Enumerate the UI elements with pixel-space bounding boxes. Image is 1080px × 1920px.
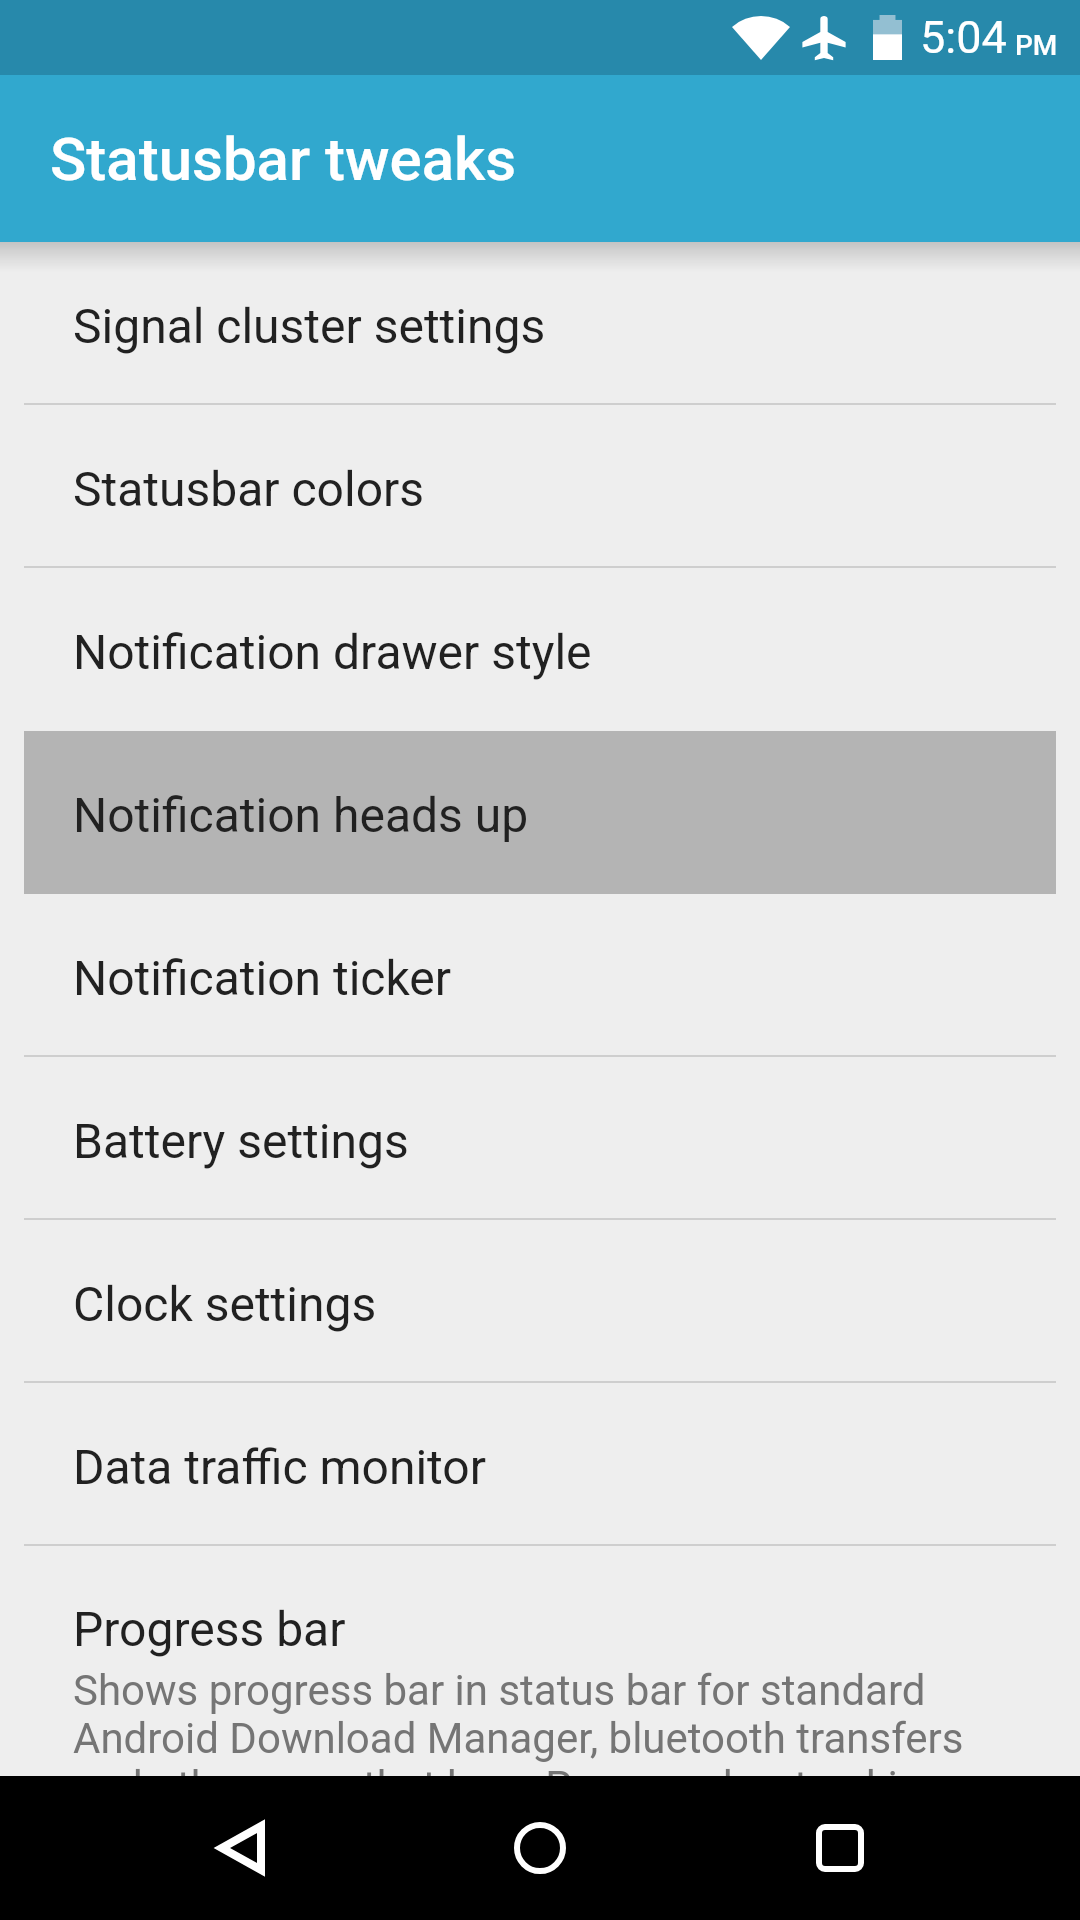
button[interactable]: Battery settings [0, 1057, 1080, 1220]
button[interactable]: Data traffic monitor [0, 1383, 1080, 1546]
staticText: Notification ticker [73, 950, 452, 1006]
staticText: Signal cluster settings [73, 298, 546, 354]
staticText: Shows progress bar in status bar for sta… [73, 1666, 1020, 1776]
button[interactable]: Statusbar colors [0, 405, 1080, 568]
button[interactable]: Notification heads up [0, 731, 1080, 894]
staticText: Statusbar colors [73, 461, 425, 517]
button[interactable]: Recent apps [780, 1788, 900, 1908]
button[interactable]: Home [480, 1788, 600, 1908]
staticText: 5:04 [920, 11, 1007, 64]
staticText: Battery settings [73, 1113, 409, 1169]
button[interactable]: Back [180, 1788, 300, 1908]
button[interactable]: Signal cluster settings [0, 242, 1080, 405]
staticText: Clock settings [73, 1276, 377, 1332]
staticText: Statusbar tweaks [50, 124, 517, 194]
staticText: Data traffic monitor [73, 1439, 486, 1495]
button[interactable]: Clock settings [0, 1220, 1080, 1383]
button[interactable]: Notification drawer style [0, 568, 1080, 731]
staticText: Progress bar [73, 1601, 346, 1657]
staticText: Notification heads up [73, 787, 529, 843]
staticText: Notification drawer style [73, 624, 592, 680]
button[interactable]: Notification ticker [0, 894, 1080, 1057]
staticText: PM [1015, 29, 1058, 62]
